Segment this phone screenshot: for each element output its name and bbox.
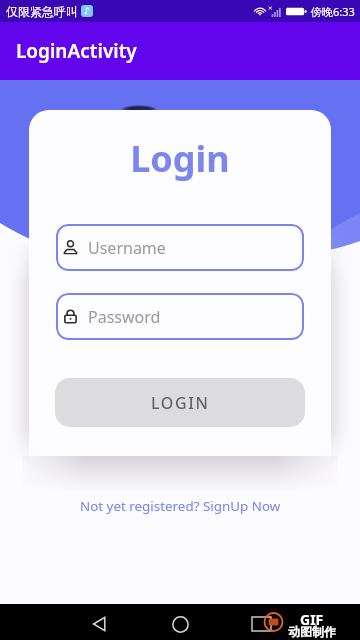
button[interactable]: LOGIN: [55, 378, 305, 427]
staticText: Username: [88, 237, 166, 259]
staticText: LoginActivity: [16, 38, 137, 64]
staticText: GIF: [300, 610, 324, 629]
button[interactable]: Recents: [241, 606, 281, 640]
staticText: 傍晚6:33: [311, 4, 355, 19]
button[interactable]: Password: [56, 293, 304, 340]
button[interactable]: Username: [56, 224, 304, 271]
button[interactable]: Home: [160, 606, 200, 640]
staticText: 动图制作: [288, 624, 336, 639]
button[interactable]: Back: [80, 606, 120, 640]
staticText: ♪: [84, 6, 90, 16]
staticText: Login: [29, 134, 331, 183]
staticText: Not yet registered? SignUp Now: [80, 497, 281, 515]
button[interactable]: Not yet registered? SignUp Now: [74, 494, 287, 518]
staticText: Password: [88, 306, 161, 328]
staticText: 仅限紧急呼叫: [6, 4, 78, 19]
staticText: LOGIN: [151, 392, 210, 414]
